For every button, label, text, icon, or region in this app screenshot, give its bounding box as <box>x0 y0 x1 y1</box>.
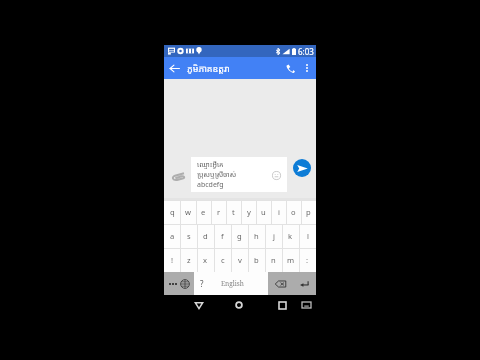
staticText: l <box>307 231 309 241</box>
button[interactable]: Attach <box>170 169 186 185</box>
staticText: z <box>187 255 191 265</box>
button[interactable]: Keyboard options <box>164 272 194 295</box>
staticText: s <box>187 231 191 241</box>
button[interactable]: e <box>196 200 211 224</box>
staticText: English <box>221 279 244 288</box>
button[interactable]: q <box>164 200 180 224</box>
button[interactable]: More options <box>300 57 314 79</box>
button[interactable]: ? <box>194 272 209 295</box>
staticText: w <box>185 207 191 217</box>
button[interactable]: u <box>256 200 271 224</box>
staticText: g <box>237 231 242 241</box>
button[interactable]: Back <box>164 57 185 79</box>
button[interactable]: l <box>299 224 316 248</box>
button[interactable]: c <box>214 248 231 272</box>
button[interactable]: g <box>231 224 248 248</box>
button[interactable]: Enter <box>292 272 316 295</box>
staticText: i <box>278 207 280 217</box>
staticText: q <box>170 207 175 217</box>
button[interactable]: English <box>209 272 268 295</box>
button[interactable]: d <box>197 224 214 248</box>
staticText: ! <box>171 255 174 265</box>
staticText: k <box>288 231 293 241</box>
staticText: r <box>217 207 221 217</box>
button[interactable]: t <box>226 200 241 224</box>
staticText: u <box>261 207 266 217</box>
button[interactable]: y <box>241 200 256 224</box>
button[interactable]: p <box>301 200 316 224</box>
staticText: t <box>232 207 235 217</box>
button[interactable]: : <box>299 248 316 272</box>
button[interactable]: v <box>231 248 248 272</box>
staticText: : <box>306 255 309 265</box>
staticText: y <box>247 207 251 217</box>
button[interactable]: Back <box>188 295 210 315</box>
button[interactable]: Recent apps <box>271 295 293 315</box>
button[interactable]: j <box>265 224 282 248</box>
button[interactable]: i <box>271 200 286 224</box>
staticText: ឈ្មោះអ្វីគេ <box>197 160 224 170</box>
staticText: a <box>170 231 175 241</box>
staticText: ភូមិភាគឧត្តរា <box>187 62 230 74</box>
button[interactable]: n <box>265 248 282 272</box>
button[interactable]: w <box>180 200 196 224</box>
staticText: m <box>287 255 295 265</box>
staticText: o <box>291 207 296 217</box>
button[interactable]: x <box>197 248 214 272</box>
staticText: v <box>238 255 242 265</box>
button[interactable]: Hide keyboard <box>296 295 316 315</box>
button[interactable]: s <box>180 224 197 248</box>
staticText: h <box>254 231 259 241</box>
staticText: ប្រុសឬស្រីចាស់ <box>197 170 237 180</box>
staticText: f <box>221 231 224 241</box>
button[interactable]: Call <box>280 57 300 79</box>
button[interactable]: b <box>248 248 265 272</box>
button[interactable]: h <box>248 224 265 248</box>
button[interactable]: Send <box>293 159 311 177</box>
staticText: p <box>306 207 311 217</box>
button[interactable]: a <box>164 224 180 248</box>
staticText: x <box>203 255 208 265</box>
staticText: c <box>221 255 225 265</box>
staticText: n <box>271 255 276 265</box>
staticText: abcdefg <box>197 180 224 190</box>
button[interactable]: Emoji <box>270 169 282 181</box>
button[interactable]: m <box>282 248 299 272</box>
staticText: d <box>203 231 208 241</box>
staticText: 6:03 <box>298 46 314 57</box>
staticText: b <box>254 255 259 265</box>
staticText: j <box>273 231 275 241</box>
staticText: ? <box>200 278 204 289</box>
button[interactable]: o <box>286 200 301 224</box>
button[interactable]: k <box>282 224 299 248</box>
button[interactable]: r <box>211 200 226 224</box>
staticText: e <box>201 207 206 217</box>
button[interactable]: z <box>180 248 197 272</box>
button[interactable]: Delete <box>268 272 292 295</box>
button[interactable]: ! <box>164 248 180 272</box>
button[interactable]: Home <box>228 295 250 315</box>
button[interactable]: f <box>214 224 231 248</box>
